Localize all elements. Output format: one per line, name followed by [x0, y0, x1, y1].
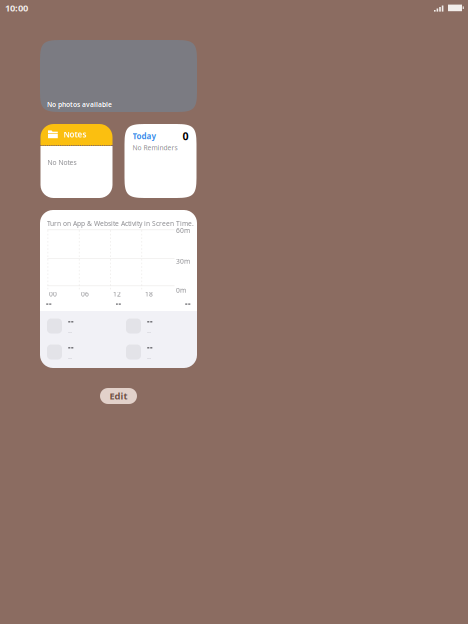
button[interactable]: Notes [40, 124, 112, 198]
staticText: -- [115, 298, 121, 309]
staticText: Edit [109, 390, 127, 402]
staticText: 06 [81, 289, 89, 298]
staticText: Today [132, 131, 156, 141]
staticText: -- [147, 316, 153, 326]
staticText: 18 [145, 289, 153, 298]
staticText: -- [68, 327, 72, 336]
staticText: -- [68, 353, 72, 362]
staticText: -- [147, 342, 153, 352]
staticText: No Notes [47, 158, 76, 167]
staticText: 12 [113, 289, 121, 298]
staticText: -- [147, 353, 151, 362]
button[interactable]: Today [124, 124, 196, 198]
staticText: 0 [182, 129, 188, 143]
staticText: -- [46, 298, 52, 309]
staticText: -- [185, 298, 191, 309]
staticText: 30m [176, 257, 190, 266]
staticText: No photos available [47, 100, 112, 109]
button[interactable]: Turn on App & Website Activity in Screen… [40, 210, 197, 368]
staticText: 0m [176, 286, 186, 295]
staticText: Notes [63, 129, 86, 140]
staticText: 60m [176, 226, 190, 235]
staticText: -- [147, 327, 151, 336]
staticText: 00 [49, 289, 57, 298]
staticText: Turn on App & Website Activity in Screen… [47, 219, 194, 228]
staticText: No Reminders [132, 143, 177, 152]
button[interactable]: Edit [100, 388, 137, 404]
button[interactable]: No photos available [40, 40, 197, 112]
staticText: -- [68, 342, 74, 352]
staticText: -- [68, 316, 74, 326]
staticText: 10:00 [5, 2, 28, 14]
